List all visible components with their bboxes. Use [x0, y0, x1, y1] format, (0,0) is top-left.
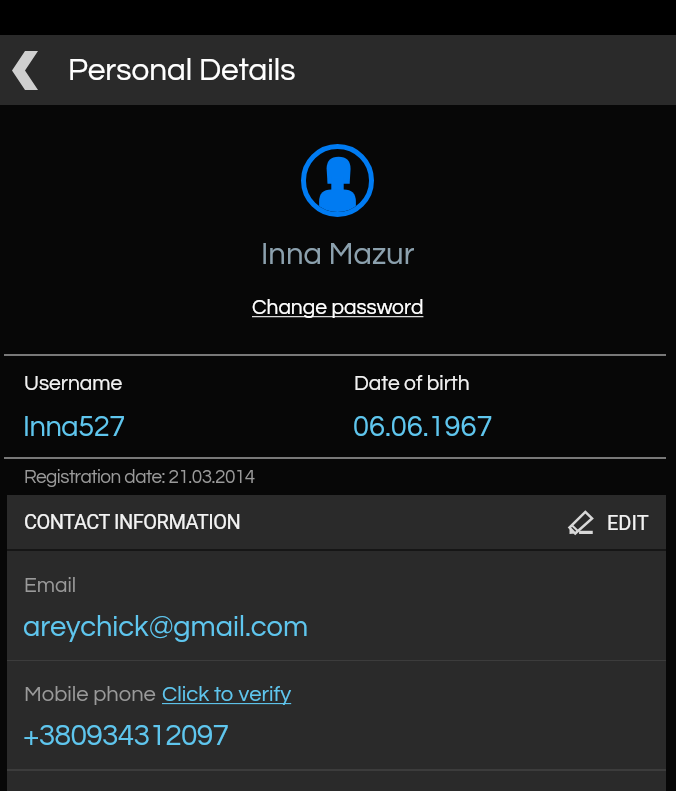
staticText: areychick@gmail.com [23, 612, 309, 642]
staticText: Registration date: 21.03.2014 [24, 467, 255, 487]
staticText: Personal Details [68, 54, 296, 86]
staticText: +380934312097 [23, 720, 229, 751]
button[interactable]: Navigate back [0, 35, 50, 105]
button[interactable]: Change password [252, 297, 424, 319]
button[interactable] [7, 551, 666, 660]
staticText: Click to verify [162, 683, 292, 706]
button[interactable] [7, 495, 666, 550]
button[interactable]: 06.06.1967 [353, 412, 493, 442]
staticText: Username [24, 373, 123, 395]
button[interactable]: EDIT [560, 495, 660, 550]
staticText: CONTACT INFORMATION [24, 510, 241, 533]
button[interactable]: Inna527 [23, 412, 125, 442]
staticText: Inna Mazur [261, 239, 415, 271]
staticText: Change password [252, 297, 424, 319]
staticText: Email [24, 575, 77, 597]
button[interactable]: Click to verify [162, 683, 292, 706]
staticText: Mobile phone [24, 683, 156, 706]
staticText: Date of birth [354, 373, 470, 395]
button[interactable] [7, 661, 666, 769]
staticText: EDIT [607, 511, 649, 534]
